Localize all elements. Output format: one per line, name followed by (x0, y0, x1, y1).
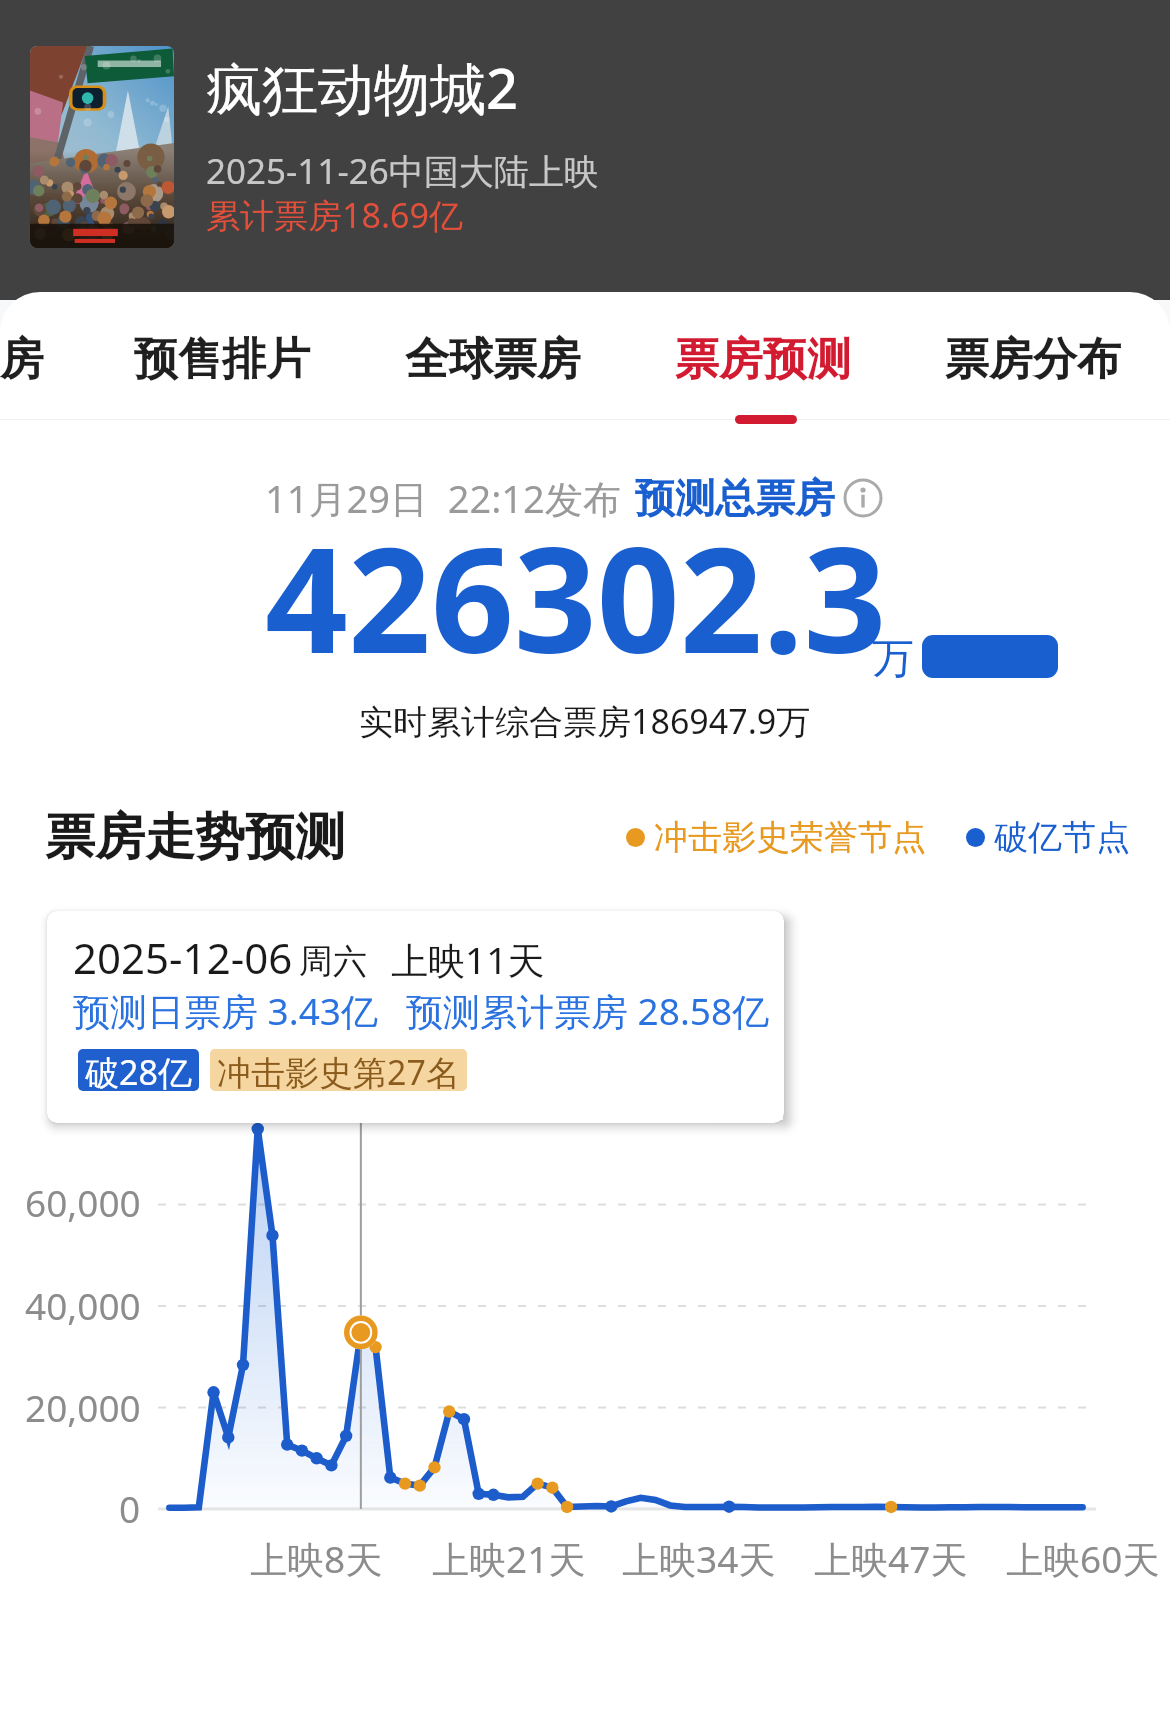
staticText: 60,000 (25, 1177, 141, 1227)
button[interactable]: 房 (0, 324, 58, 395)
staticText: 房 (0, 332, 44, 387)
staticText: 累计票房18.69亿 (206, 192, 463, 238)
staticText: 实时累计综合票房186947.9万 (359, 698, 811, 744)
button[interactable]: 2025-12-06 (47, 911, 784, 1123)
staticText: 2025-12-06 (73, 929, 293, 986)
staticText: 上映34天 (622, 1533, 776, 1584)
staticText: 11月29日 22:12发布 (265, 472, 621, 524)
button[interactable]: 票房走势 (922, 635, 1058, 678)
staticText: 破28亿 (85, 1049, 192, 1091)
staticText: 上映21天 (432, 1533, 586, 1584)
staticText: 20,000 (25, 1382, 141, 1432)
staticText: 426302.3 (265, 498, 887, 695)
button[interactable]: 票房分布 (931, 324, 1135, 395)
button[interactable]: 预售排片 (120, 324, 324, 395)
staticText: 上映60天 (1006, 1533, 1160, 1584)
staticText: 疯狂动物城2 (206, 49, 519, 125)
staticText: 预测累计票房 28.58亿 (406, 985, 770, 1036)
button[interactable]: 票房预测 (661, 324, 865, 395)
staticText: 票房分布 (945, 332, 1121, 387)
staticText: 破亿节点 (994, 816, 1130, 859)
button[interactable]: 电影海报 (30, 46, 174, 248)
staticText: 预售排片 (134, 332, 310, 387)
staticText: 冲击影史荣誉节点 (654, 816, 926, 859)
staticText: 2025-11-26中国大陆上映 (206, 147, 599, 195)
staticText: 票房预测 (675, 332, 851, 387)
staticText: 预测日票房 3.43亿 (73, 985, 379, 1036)
button[interactable]: 说明 (843, 478, 883, 518)
staticText: 40,000 (25, 1280, 141, 1330)
staticText: 周六 (299, 940, 367, 983)
staticText: 全球票房 (405, 332, 581, 387)
staticText: 0 (119, 1483, 141, 1533)
staticText: 票房走势预测 (45, 806, 345, 869)
staticText: 预测总票房 (635, 473, 835, 523)
button[interactable]: 全球票房 (391, 324, 595, 395)
staticText: 冲击影史第27名 (217, 1049, 460, 1091)
staticText: 万 (872, 633, 914, 686)
staticText: 上映8天 (250, 1533, 383, 1584)
staticText: 上映11天 (391, 934, 545, 985)
staticText: 上映47天 (814, 1533, 968, 1584)
